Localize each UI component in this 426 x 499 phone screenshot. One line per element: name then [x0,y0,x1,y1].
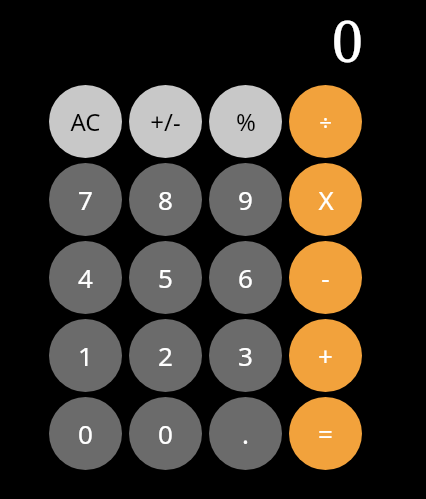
staticText: - [321,260,330,295]
button[interactable]: 9 [209,163,282,236]
staticText: 0 [158,416,173,451]
button[interactable]: 0 [129,397,202,470]
staticText: 9 [238,182,253,217]
button[interactable]: 2 [129,319,202,392]
staticText: 4 [78,260,93,295]
staticText: 0 [331,2,363,78]
button[interactable]: AC [49,85,122,158]
button[interactable]: 0 [49,397,122,470]
staticText: ÷ [319,107,332,137]
staticText: 0 [78,416,93,451]
staticText: +/- [150,105,181,138]
staticText: AC [70,105,101,138]
button[interactable]: 3 [209,319,282,392]
button[interactable]: 8 [129,163,202,236]
button[interactable]: Equals [289,397,362,470]
staticText: . [242,416,249,451]
button[interactable]: . [209,397,282,470]
button[interactable]: Plus [289,319,362,392]
button[interactable]: % [209,85,282,158]
staticText: 8 [158,182,173,217]
button[interactable]: 1 [49,319,122,392]
staticText: 6 [238,260,253,295]
staticText: 7 [78,182,93,217]
button[interactable]: 4 [49,241,122,314]
button[interactable]: Divide [289,85,362,158]
staticText: = [318,416,333,451]
button[interactable]: 6 [209,241,282,314]
staticText: + [318,338,333,373]
staticText: 5 [158,260,173,295]
staticText: % [236,105,256,138]
button[interactable]: Multiply [289,163,362,236]
staticText: 1 [78,338,93,373]
button[interactable]: 5 [129,241,202,314]
staticText: X [318,182,334,217]
button[interactable]: Minus [289,241,362,314]
button[interactable]: +/- [129,85,202,158]
button[interactable]: 7 [49,163,122,236]
staticText: 2 [158,338,173,373]
staticText: 3 [238,338,253,373]
